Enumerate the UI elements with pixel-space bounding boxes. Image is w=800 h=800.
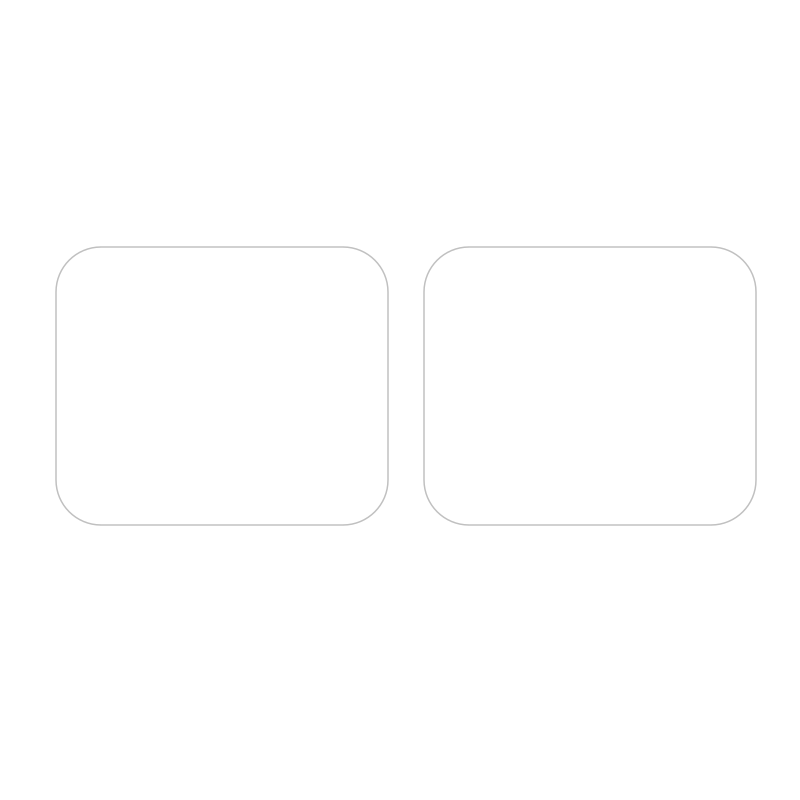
button[interactable]: First card [56, 247, 388, 525]
button[interactable]: Second card [424, 247, 756, 525]
